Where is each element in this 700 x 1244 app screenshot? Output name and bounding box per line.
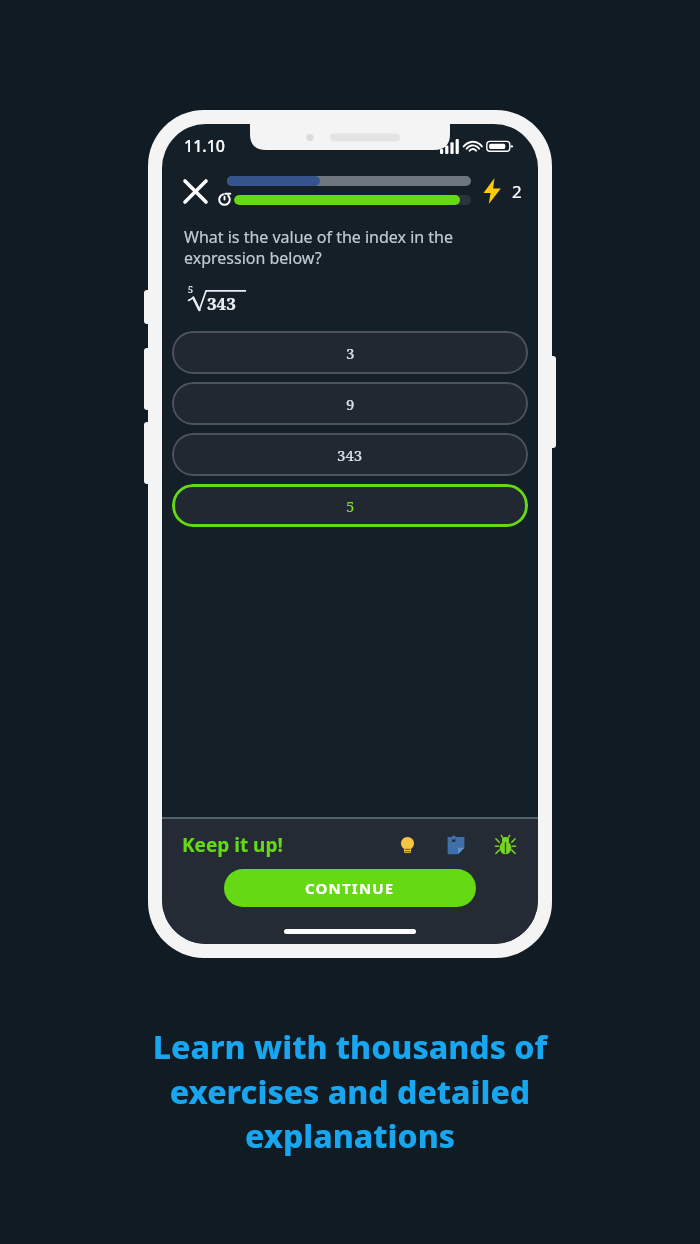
button[interactable]: Close [174,170,216,212]
staticText: 2 [512,180,522,203]
button[interactable]: Energy [481,176,503,206]
staticText: 9 [346,394,355,414]
staticText: 11.10 [184,135,225,157]
button[interactable]: 9 [172,382,528,425]
staticText: Keep it up! [182,832,283,858]
staticText: 5 [188,283,194,295]
staticText: 3 [346,343,355,363]
staticText: 5 [346,496,355,516]
staticText: 343 [337,445,363,465]
button[interactable]: Report bug [492,832,518,858]
button[interactable]: 5 [172,484,528,527]
button[interactable]: Hint [394,832,420,858]
button[interactable]: 343 [172,433,528,476]
button[interactable]: Notes [443,832,469,858]
button[interactable]: CONTINUE [224,869,476,907]
staticText: Learn with thousands of exercises and de… [0,1025,700,1157]
button[interactable]: 3 [172,331,528,374]
staticText: What is the value of the index in the ex… [184,226,454,269]
staticText: 343 [207,292,236,313]
staticText: CONTINUE [305,878,395,898]
